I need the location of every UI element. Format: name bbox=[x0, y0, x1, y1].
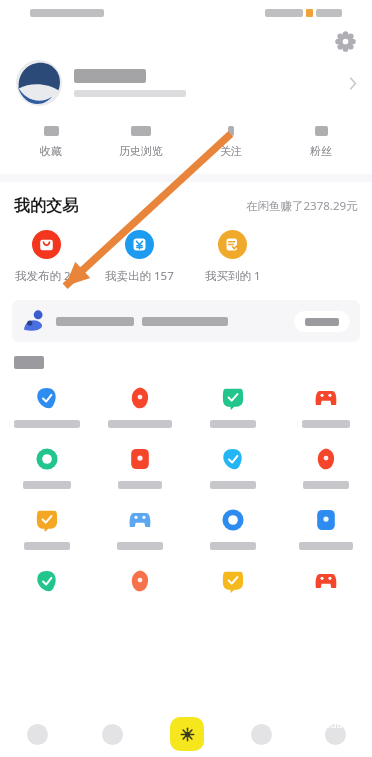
button[interactable]: 粉丝 bbox=[276, 110, 366, 174]
staticText: 历史浏览 bbox=[119, 144, 163, 158]
staticText: 我的交易 bbox=[14, 196, 78, 216]
button[interactable] bbox=[186, 509, 279, 550]
button[interactable]: Profile bbox=[298, 711, 372, 757]
button[interactable] bbox=[0, 570, 93, 603]
staticText: jingyan.baidu.com bbox=[279, 717, 366, 731]
button[interactable]: 关注 bbox=[186, 110, 276, 174]
staticText: 我卖出的 157 bbox=[105, 268, 174, 284]
button[interactable] bbox=[186, 448, 279, 489]
button[interactable] bbox=[93, 509, 186, 550]
button[interactable] bbox=[279, 448, 372, 489]
button[interactable]: 我卖出的 157 bbox=[93, 230, 186, 284]
button[interactable] bbox=[279, 387, 372, 428]
button[interactable] bbox=[0, 509, 93, 550]
button[interactable]: Publish bbox=[170, 717, 204, 751]
staticText: 我买到的 1 bbox=[205, 268, 261, 284]
button[interactable] bbox=[279, 570, 372, 603]
button[interactable] bbox=[0, 448, 93, 489]
staticText: 粉丝 bbox=[310, 144, 332, 158]
button[interactable] bbox=[93, 448, 186, 489]
button[interactable] bbox=[0, 387, 93, 428]
button[interactable] bbox=[16, 56, 358, 110]
button[interactable]: Settings bbox=[332, 28, 358, 54]
button[interactable] bbox=[186, 570, 279, 603]
staticText: 我发布的 28 bbox=[15, 268, 78, 284]
button[interactable]: 我发布的 28 bbox=[0, 230, 93, 284]
button[interactable]: 历史浏览 bbox=[96, 110, 186, 174]
button[interactable] bbox=[93, 570, 186, 603]
button[interactable] bbox=[93, 387, 186, 428]
staticText: 关注 bbox=[220, 144, 242, 158]
button[interactable]: Home bbox=[0, 711, 75, 757]
button[interactable]: Messages bbox=[224, 711, 298, 757]
staticText: 收藏 bbox=[40, 144, 62, 158]
staticText: 在闲鱼赚了2378.29元 bbox=[246, 198, 358, 214]
button[interactable] bbox=[279, 509, 372, 550]
button[interactable]: Fish Pond bbox=[75, 711, 150, 757]
button[interactable] bbox=[186, 387, 279, 428]
button[interactable] bbox=[12, 300, 360, 342]
button[interactable]: 我买到的 1 bbox=[186, 230, 279, 284]
button[interactable]: 收藏 bbox=[6, 110, 96, 174]
button[interactable] bbox=[294, 311, 350, 332]
